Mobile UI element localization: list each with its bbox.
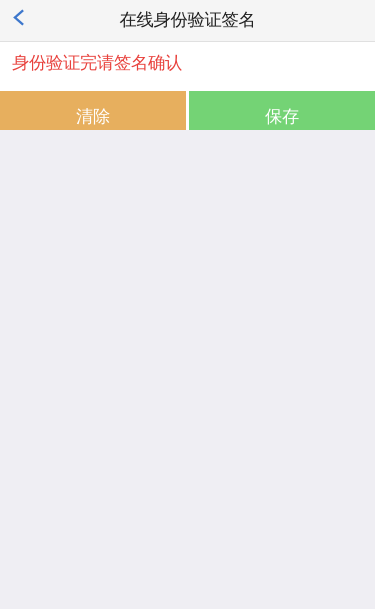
button[interactable]: Back bbox=[0, 0, 38, 41]
staticText: 清除 bbox=[76, 106, 110, 127]
button[interactable]: 保存 bbox=[189, 91, 375, 130]
button[interactable]: 清除 bbox=[0, 91, 186, 130]
staticText: 在线身份验证签名 bbox=[119, 9, 255, 30]
staticText: 保存 bbox=[265, 106, 299, 127]
staticText: 身份验证完请签名确认 bbox=[12, 52, 182, 73]
